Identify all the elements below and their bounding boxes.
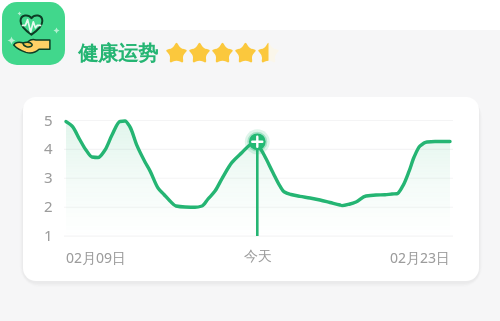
staticText: 02月23日 [390,248,451,267]
staticText: 2 [44,196,53,216]
staticText: 3 [44,167,53,187]
staticText: 健康运势 [78,41,158,66]
button[interactable]: 评分 4.5 星 [165,41,280,64]
staticText: 今天 [244,248,272,266]
button[interactable]: 健康运势 [2,2,65,65]
staticText: 02月09日 [66,248,127,267]
staticText: 1 [44,225,53,245]
staticText: 5 [44,110,53,130]
staticText: 4 [44,138,53,158]
